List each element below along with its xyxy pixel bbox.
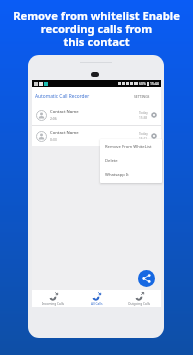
staticText: 15:44 (150, 81, 159, 86)
staticText: Contact Name (50, 130, 79, 136)
button[interactable]: Options (151, 133, 157, 139)
staticText: SETTINGS (134, 94, 150, 98)
button[interactable]: Incoming Calls (32, 290, 75, 307)
staticText: 15:38 (139, 116, 148, 120)
button[interactable]: Delete (100, 154, 162, 168)
button[interactable]: Contact Name (32, 126, 161, 146)
button[interactable]: SETTINGS (132, 92, 152, 100)
staticText: Automatic Call Recorder (35, 93, 90, 100)
staticText: Incoming Calls (42, 302, 65, 306)
button[interactable]: Outgoing Calls (118, 290, 161, 307)
staticText: Whatsapp It (105, 172, 129, 178)
staticText: All Calls (91, 302, 103, 306)
staticText: 0:33 (50, 137, 57, 142)
staticText: Today (139, 111, 148, 115)
button[interactable]: All Calls (75, 290, 118, 307)
button[interactable]: Share (138, 270, 155, 287)
staticText: Remove from whitelist Enable recording c… (13, 8, 180, 49)
staticText: Delete (105, 158, 118, 164)
staticText: Today (139, 132, 148, 136)
button[interactable]: Options (151, 112, 157, 118)
staticText: 60% (139, 81, 146, 86)
staticText: Remove From WhiteList (105, 144, 152, 150)
staticText: 15:11 (139, 137, 148, 141)
staticText: 2:06 (50, 116, 57, 121)
button[interactable]: Contact Name (32, 105, 161, 125)
button[interactable]: Whatsapp It (100, 168, 162, 182)
button[interactable]: Remove From WhiteList (100, 140, 162, 154)
staticText: Contact Name (50, 109, 79, 115)
staticText: Outgoing Calls (128, 302, 151, 306)
